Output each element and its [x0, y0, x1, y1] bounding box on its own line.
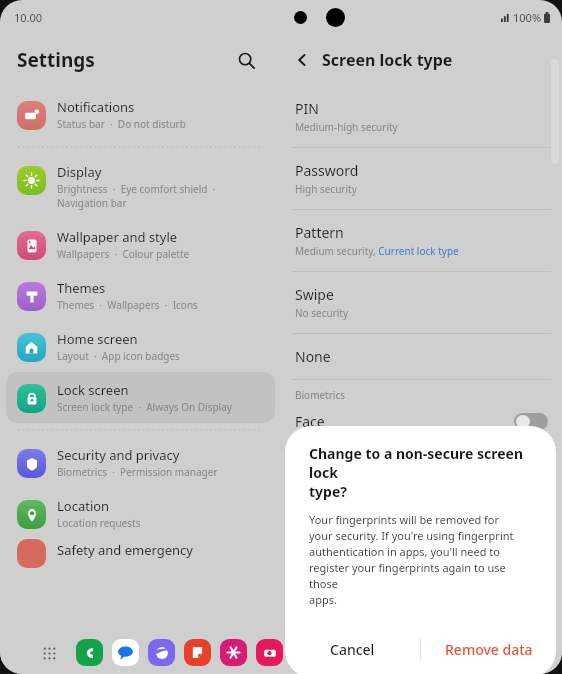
button[interactable]: Samsung Notes: [184, 639, 211, 666]
staticText: 100%: [513, 10, 542, 25]
staticText: Notifications: [57, 98, 135, 116]
button[interactable]: Camera: [256, 639, 283, 666]
staticText: Status bar · Do not disturb: [57, 117, 186, 131]
button[interactable]: Back: [287, 45, 317, 75]
button[interactable]: Gallery: [220, 639, 247, 666]
button[interactable]: Apps: [36, 640, 62, 666]
button[interactable]: Recents: [412, 637, 442, 667]
button[interactable]: Internet: [148, 639, 175, 666]
button[interactable]: Cancel: [285, 627, 420, 671]
staticText: PIN: [295, 99, 319, 118]
button[interactable]: None: [281, 334, 562, 380]
button[interactable]: Notifications: [6, 89, 275, 140]
button[interactable]: PIN: [281, 86, 562, 148]
button[interactable]: Face: [281, 412, 562, 431]
staticText: Safety and emergency: [57, 541, 193, 559]
staticText: Screen lock type: [322, 49, 453, 71]
staticText: Biometrics: [295, 388, 346, 402]
staticText: Display: [57, 163, 102, 181]
staticText: Wallpapers · Colour palette: [57, 247, 190, 261]
staticText: Brightness · Eye comfort shield · Naviga…: [57, 182, 216, 210]
staticText: Password: [295, 161, 359, 180]
button[interactable]: Home: [462, 637, 492, 667]
staticText: Layout · App icon badges: [57, 349, 180, 363]
staticText: Themes · Wallpapers · Icons: [57, 298, 198, 312]
staticText: Your fingerprints will be removed for yo…: [309, 512, 532, 607]
button[interactable]: Wallpaper and style: [6, 219, 275, 270]
button[interactable]: Themes: [6, 270, 275, 321]
staticText: Biometrics · Permission manager: [57, 465, 218, 479]
button[interactable]: Password: [281, 148, 562, 210]
staticText: Themes: [57, 279, 106, 297]
button[interactable]: Back: [512, 637, 542, 667]
button[interactable]: Pattern: [281, 210, 562, 272]
staticText: Medium-high security: [295, 120, 398, 134]
staticText: Wallpaper and style: [57, 228, 178, 246]
button[interactable]: Search: [231, 45, 261, 75]
staticText: Location: [57, 497, 110, 515]
staticText: Remove data: [445, 640, 533, 659]
staticText: Location requests: [57, 516, 141, 530]
staticText: 10.00: [14, 10, 43, 25]
staticText: Swipe: [295, 285, 334, 304]
staticText: Home screen: [57, 330, 138, 348]
staticText: Cancel: [330, 640, 375, 659]
button[interactable]: Swipe: [281, 272, 562, 334]
staticText: High security: [295, 182, 357, 196]
button[interactable]: Phone: [76, 639, 103, 666]
button[interactable]: Lock screen: [6, 372, 275, 423]
staticText: Face: [295, 412, 325, 431]
staticText: No security: [295, 306, 349, 320]
button[interactable]: Display: [6, 154, 275, 219]
staticText: Security and privacy: [57, 446, 180, 464]
staticText: Screen lock type · Always On Display: [57, 400, 232, 414]
staticText: None: [295, 347, 331, 366]
staticText: Medium security, Current lock type: [295, 244, 459, 258]
button[interactable]: Security and privacy: [6, 437, 275, 488]
staticText: Lock screen: [57, 381, 129, 399]
staticText: Settings: [17, 47, 95, 73]
staticText: Change to a non-secure screen lock type?: [309, 444, 532, 501]
staticText: Pattern: [295, 223, 344, 242]
button[interactable]: Location: [6, 488, 275, 539]
button[interactable]: Remove data: [421, 627, 556, 671]
button[interactable]: Home screen: [6, 321, 275, 372]
button[interactable]: Messages: [112, 639, 139, 666]
